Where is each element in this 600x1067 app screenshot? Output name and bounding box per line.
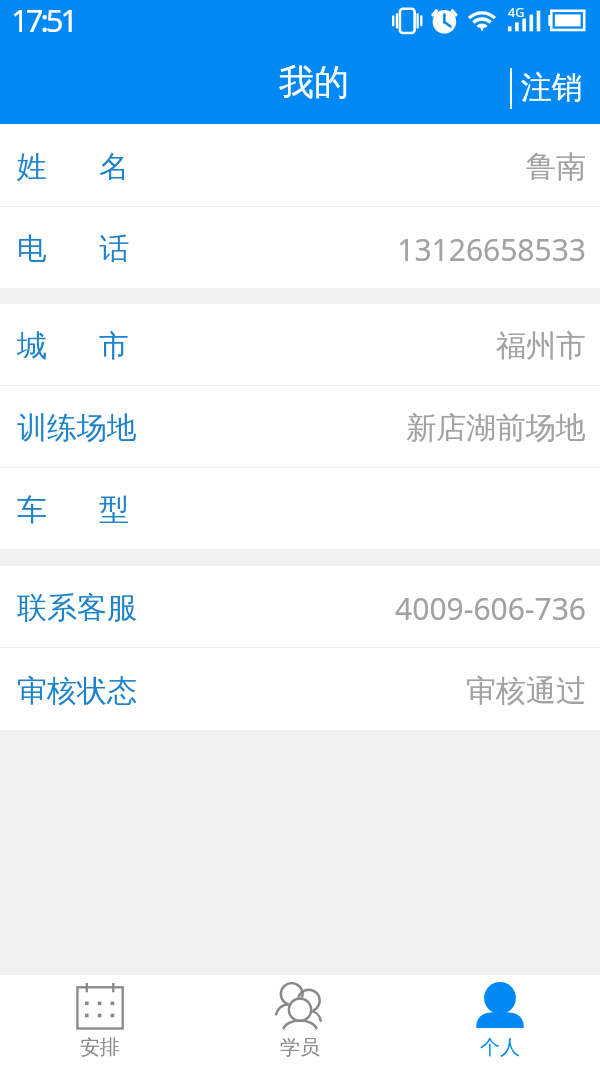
staticText: 17:51 <box>11 0 76 41</box>
staticText: 鲁南 <box>526 148 586 186</box>
button[interactable]: 个人 <box>400 975 600 1067</box>
button[interactable]: 城 <box>0 304 600 386</box>
button[interactable]: Log out <box>504 62 591 114</box>
staticText: 训练场地 <box>17 409 137 447</box>
staticText: 福州市 <box>496 327 586 365</box>
staticText: 注销 <box>521 68 583 107</box>
staticText: 4G <box>508 4 525 21</box>
staticText: 名 <box>99 148 129 186</box>
staticText: 车 <box>17 491 47 529</box>
staticText: 审核通过 <box>466 672 586 710</box>
button[interactable]: 姓 <box>0 124 600 207</box>
staticText: 个人 <box>480 1035 520 1060</box>
button[interactable]: 审核状态 <box>0 648 600 730</box>
staticText: 姓 <box>17 148 47 186</box>
staticText: 审核状态 <box>17 672 137 710</box>
button[interactable]: 学员 <box>200 975 400 1067</box>
staticText: 城 <box>17 327 47 365</box>
staticText: 13126658533 <box>397 229 586 270</box>
staticText: 型 <box>99 491 129 529</box>
button[interactable]: 联系客服 <box>0 566 600 648</box>
staticText: 我的 <box>279 60 349 104</box>
button[interactable]: 安排 <box>0 975 200 1067</box>
staticText: 新店湖前场地 <box>406 409 586 447</box>
button[interactable]: 车 <box>0 468 600 549</box>
staticText: 学员 <box>280 1035 320 1060</box>
button[interactable]: 训练场地 <box>0 386 600 468</box>
staticText: 市 <box>99 327 129 365</box>
staticText: 安排 <box>80 1035 120 1060</box>
button[interactable]: 电 <box>0 207 600 288</box>
staticText: 话 <box>99 230 129 268</box>
staticText: 4009-606-736 <box>395 588 586 629</box>
staticText: 电 <box>17 230 47 268</box>
staticText: 联系客服 <box>17 589 137 627</box>
